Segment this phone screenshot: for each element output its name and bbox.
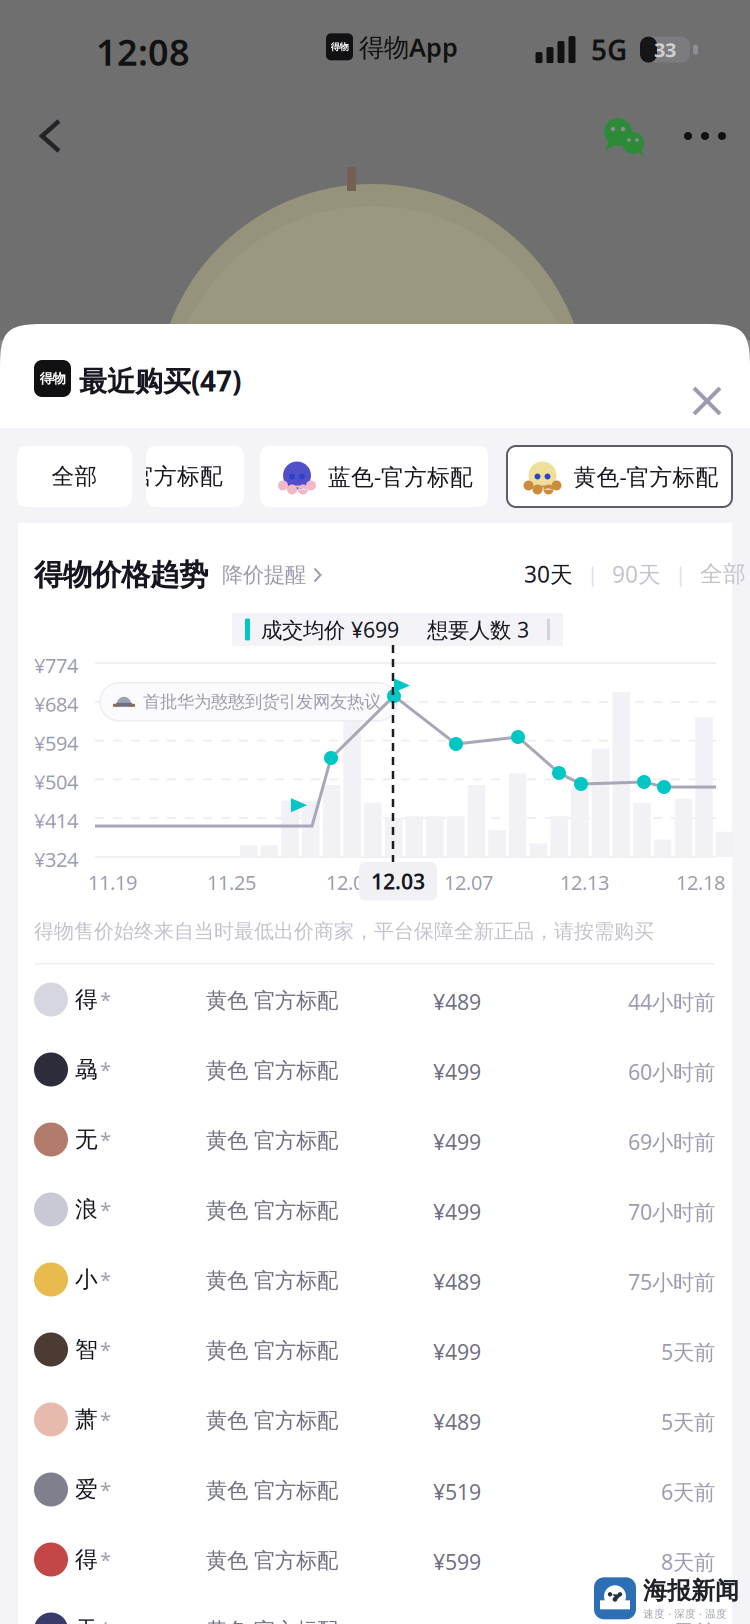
- staticText: *: [100, 1616, 111, 1624]
- staticText: 11.19: [88, 869, 137, 896]
- staticText: 5天前: [661, 1407, 715, 1436]
- staticText: ¥489: [433, 987, 481, 1016]
- staticText: ¥519: [433, 1477, 481, 1506]
- staticText: 黄色 官方标配: [206, 1477, 338, 1504]
- staticText: ¥499: [433, 1127, 481, 1156]
- staticText: 12:08: [96, 28, 190, 76]
- staticText: 骉: [75, 1055, 98, 1083]
- staticText: 小: [75, 1265, 98, 1293]
- staticText: 5天前: [661, 1337, 715, 1366]
- staticText: ¥499: [433, 1057, 481, 1086]
- staticText: *: [100, 1406, 111, 1433]
- staticText: *: [100, 986, 111, 1013]
- button[interactable]: 得: [18, 964, 732, 1034]
- button[interactable]: 全部: [17, 446, 132, 507]
- button[interactable]: 全部: [700, 560, 746, 588]
- staticText: 首批华为憨憨到货引发网友热议: [143, 691, 381, 712]
- staticText: ¥414: [34, 807, 78, 834]
- button[interactable]: 无: [18, 1104, 732, 1174]
- button[interactable]: More: [668, 110, 742, 162]
- staticText: 官方标配: [131, 463, 223, 490]
- staticText: 天: [75, 1615, 98, 1624]
- staticText: 黄色 官方标配: [206, 1057, 338, 1084]
- staticText: ¥489: [433, 1267, 481, 1296]
- staticText: 75小时前: [628, 1267, 715, 1296]
- staticText: 6天前: [661, 1477, 715, 1506]
- staticText: 69小时前: [628, 1127, 715, 1156]
- staticText: ¥324: [34, 846, 78, 873]
- button[interactable]: 得: [18, 1524, 732, 1594]
- staticText: *: [100, 1196, 111, 1223]
- staticText: ¥499: [433, 1197, 481, 1226]
- staticText: 黄色 官方标配: [206, 1547, 338, 1574]
- staticText: *: [100, 1126, 111, 1153]
- staticText: 想要人数 3: [427, 615, 529, 644]
- button[interactable]: 蓝色-官方标配: [260, 446, 488, 507]
- staticText: ¥684: [34, 691, 78, 717]
- button[interactable]: 爱: [18, 1454, 732, 1524]
- staticText: 5G: [591, 31, 627, 68]
- staticText: 得物: [330, 41, 348, 53]
- staticText: |: [675, 561, 686, 587]
- staticText: *: [100, 1056, 111, 1083]
- staticText: 得物App: [359, 30, 458, 64]
- staticText: 11.25: [207, 869, 256, 896]
- staticText: 12.18: [676, 869, 725, 896]
- button[interactable]: 90天: [612, 559, 661, 589]
- staticText: 30天: [524, 559, 573, 589]
- staticText: 黄色 官方标配: [206, 1407, 338, 1434]
- staticText: 黄色 官方标配: [206, 1127, 338, 1154]
- button[interactable]: 小: [18, 1244, 732, 1314]
- staticText: 得物售价始终来自当时最低出价商家，平台保障全新正品，请按需购买: [34, 919, 654, 944]
- staticText: 12.03: [371, 867, 425, 895]
- staticText: 得物: [39, 370, 65, 387]
- button[interactable]: 天: [18, 1594, 732, 1624]
- staticText: 黄色 官方标配: [206, 1617, 338, 1624]
- staticText: 90天: [612, 559, 661, 589]
- button[interactable]: 浪: [18, 1174, 732, 1244]
- staticText: ¥489: [433, 1407, 481, 1436]
- button[interactable]: 萧: [18, 1384, 732, 1454]
- staticText: ¥504: [34, 768, 78, 795]
- button[interactable]: 官方标配: [146, 446, 244, 507]
- button[interactable]: Share to WeChat: [592, 106, 658, 170]
- staticText: 成交均价 ¥699: [261, 615, 399, 644]
- staticText: 全部: [51, 463, 97, 490]
- button[interactable]: 骉: [18, 1034, 732, 1104]
- staticText: 蓝色-官方标配: [328, 461, 473, 491]
- staticText: 60小时前: [628, 1057, 715, 1086]
- staticText: 最近购买(47): [79, 362, 241, 399]
- staticText: |: [587, 561, 598, 587]
- staticText: 海报新闻: [643, 1576, 739, 1605]
- staticText: *: [100, 1476, 111, 1503]
- staticText: 速度 · 深度 · 温度: [643, 1606, 727, 1621]
- button[interactable]: 智: [18, 1314, 732, 1384]
- staticText: 44小时前: [628, 987, 715, 1016]
- button[interactable]: 黄色-官方标配: [507, 446, 732, 507]
- staticText: 12.13: [560, 869, 609, 896]
- staticText: 爱: [75, 1475, 98, 1503]
- button[interactable]: Close: [678, 372, 736, 430]
- staticText: 黄色 官方标配: [206, 1267, 338, 1294]
- staticText: 无: [75, 1125, 98, 1153]
- button[interactable]: 降价提醒: [208, 562, 323, 588]
- staticText: 黄色 官方标配: [206, 987, 338, 1014]
- staticText: *: [100, 1336, 111, 1363]
- staticText: 黄色 官方标配: [206, 1337, 338, 1364]
- staticText: 12.07: [444, 869, 493, 896]
- staticText: 70小时前: [628, 1197, 715, 1226]
- staticText: ¥774: [34, 652, 78, 679]
- staticText: *: [100, 1546, 111, 1573]
- staticText: 得: [75, 985, 98, 1013]
- button[interactable]: 30天: [524, 559, 573, 589]
- staticText: 降价提醒: [222, 562, 306, 588]
- staticText: 8天前: [661, 1547, 715, 1576]
- staticText: 12.0: [326, 869, 364, 896]
- button[interactable]: Back: [18, 103, 83, 169]
- staticText: 智: [75, 1335, 98, 1363]
- staticText: 黄色-官方标配: [573, 461, 718, 491]
- staticText: ¥599: [433, 1547, 481, 1576]
- staticText: *: [100, 1266, 111, 1293]
- staticText: 萧: [75, 1405, 98, 1433]
